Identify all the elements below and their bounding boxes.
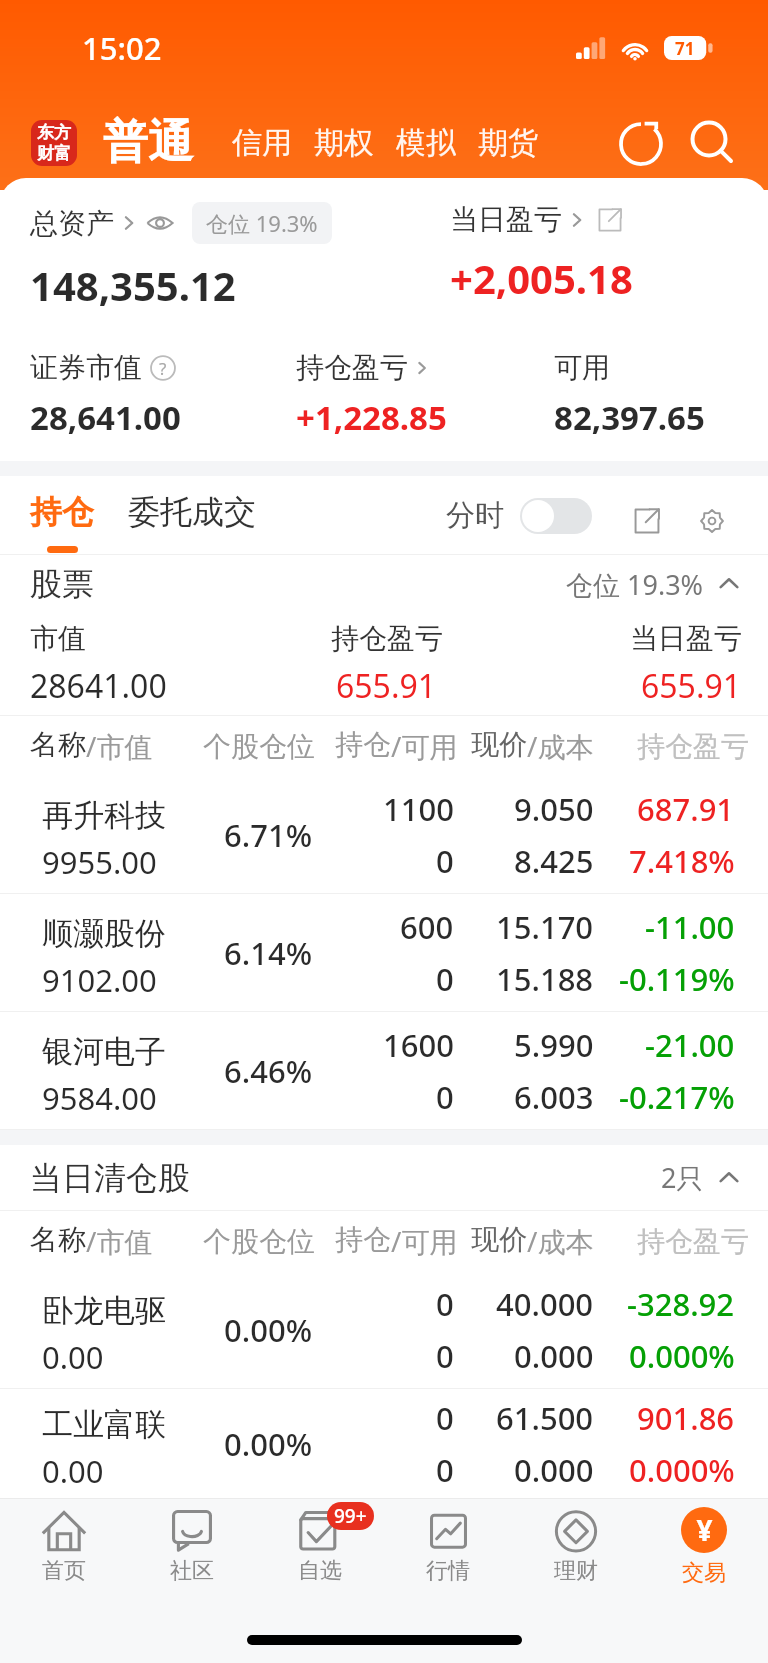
staticText: 82,397.65 — [554, 395, 705, 440]
button[interactable]: ¥ — [640, 1499, 768, 1595]
button[interactable]: 普通 — [103, 114, 193, 171]
staticText: 15.170 — [496, 906, 594, 948]
staticText: 5.990 — [514, 1024, 594, 1066]
button[interactable]: 模拟 — [385, 124, 467, 162]
staticText: 7.418% — [629, 840, 735, 882]
staticText: 9584.00 — [42, 1077, 157, 1119]
staticText: 71 — [675, 37, 695, 60]
button[interactable]: 设置 — [696, 508, 742, 554]
staticText: 655.91 — [641, 664, 742, 708]
staticText: 持仓盈亏 — [331, 621, 443, 656]
staticText: 0 — [436, 1283, 454, 1325]
staticText: 687.91 — [637, 788, 735, 830]
button[interactable]: 社区 — [128, 1499, 256, 1595]
staticText: 61.500 — [496, 1397, 594, 1439]
staticText: -0.119% — [619, 958, 735, 1000]
button[interactable]: 卧龙电驱 — [0, 1271, 768, 1388]
button[interactable]: 委托成交 — [128, 492, 256, 554]
staticText: 0 — [436, 1335, 454, 1377]
button[interactable]: 当日盈亏 — [450, 202, 622, 237]
button[interactable]: 再升科技 — [0, 776, 768, 893]
staticText: 6.14% — [224, 932, 313, 974]
button[interactable]: 期权 — [303, 124, 385, 162]
staticText: 顺灏股份 — [42, 914, 166, 953]
button[interactable]: 期货 — [467, 124, 549, 162]
staticText: 分时 — [446, 497, 504, 534]
staticText: 持仓 — [335, 727, 391, 762]
staticText: 0.00 — [42, 1450, 104, 1492]
button[interactable]: 总资产 — [30, 202, 332, 244]
staticText: 理财 — [554, 1557, 598, 1585]
staticText: 再升科技 — [42, 796, 166, 835]
staticText: 655.91 — [336, 664, 437, 708]
staticText: 银河电子 — [42, 1032, 166, 1071]
staticText: 持仓盈亏 — [637, 1224, 749, 1259]
staticText: 市值 — [30, 621, 86, 656]
staticText: /市值 — [86, 727, 153, 765]
button[interactable]: 持仓 — [30, 492, 94, 554]
button[interactable]: 首页 — [0, 1499, 128, 1595]
staticText: 现价 — [471, 727, 527, 762]
staticText: 首页 — [42, 1557, 86, 1585]
staticText: 1600 — [383, 1024, 454, 1066]
staticText: 期权 — [314, 124, 374, 162]
staticText: +1,228.85 — [296, 395, 447, 440]
staticText: 仓位 19.3% — [206, 208, 318, 238]
staticText: 6.71% — [224, 814, 313, 856]
staticText: 交易 — [682, 1559, 726, 1587]
button[interactable]: 理财 — [512, 1499, 640, 1595]
staticText: /市值 — [86, 1222, 153, 1260]
staticText: 证券市值 — [30, 350, 142, 385]
staticText: 6.003 — [514, 1076, 594, 1118]
button[interactable]: 分时 — [446, 497, 592, 554]
button[interactable]: 99+ — [256, 1499, 384, 1595]
staticText: 行情 — [426, 1557, 470, 1585]
staticText: 0 — [436, 1449, 454, 1491]
button[interactable]: 证券市值 — [30, 350, 176, 385]
staticText: 15:02 — [82, 27, 162, 69]
staticText: 0.000 — [514, 1449, 594, 1491]
staticText: 0 — [436, 1076, 454, 1118]
button[interactable]: 顺灏股份 — [0, 894, 768, 1011]
staticText: 600 — [400, 906, 454, 948]
staticText: 9.050 — [514, 788, 594, 830]
button[interactable]: 银河电子 — [0, 1012, 768, 1129]
staticText: 0.000% — [629, 1335, 735, 1377]
staticText: ? — [159, 357, 167, 380]
staticText: -21.00 — [645, 1024, 735, 1066]
staticText: 0 — [436, 1397, 454, 1439]
button[interactable]: 分享 — [628, 508, 674, 554]
button[interactable]: 东方财富 — [31, 120, 77, 166]
staticText: -11.00 — [645, 906, 735, 948]
staticText: 委托成交 — [128, 492, 256, 532]
button[interactable]: 刷新 — [614, 116, 668, 170]
staticText: /可用 — [391, 1222, 458, 1260]
staticText: 普通 — [103, 114, 193, 171]
button[interactable]: 工业富联 — [0, 1389, 768, 1498]
staticText: 15.188 — [496, 958, 594, 1000]
staticText: 个股仓位 — [203, 729, 315, 764]
staticText: 持仓 — [335, 1222, 391, 1257]
staticText: 期货 — [478, 124, 538, 162]
staticText: 148,355.12 — [30, 258, 236, 312]
staticText: 名称 — [30, 1222, 86, 1257]
staticText: 2只 — [661, 1159, 704, 1196]
staticText: 总资产 — [30, 206, 114, 241]
staticText: 1100 — [383, 788, 454, 830]
button[interactable]: 搜索 — [686, 116, 740, 170]
staticText: +2,005.18 — [450, 251, 633, 305]
staticText: 当日清仓股 — [30, 1158, 190, 1198]
button[interactable]: 股票 — [0, 555, 768, 613]
staticText: 99+ — [334, 1503, 367, 1529]
staticText: 6.46% — [224, 1050, 313, 1092]
button[interactable]: 信用 — [221, 124, 303, 162]
button[interactable]: 当日清仓股 — [0, 1145, 768, 1210]
staticText: 仓位 19.3% — [566, 566, 704, 603]
staticText: 现价 — [471, 1222, 527, 1257]
button[interactable]: 持仓盈亏 — [296, 350, 430, 385]
button[interactable]: 行情 — [384, 1499, 512, 1595]
staticText: 东方 — [37, 122, 71, 143]
staticText: /成本 — [527, 1222, 594, 1260]
staticText: 当日盈亏 — [450, 202, 562, 237]
staticText: 自选 — [298, 1557, 342, 1585]
